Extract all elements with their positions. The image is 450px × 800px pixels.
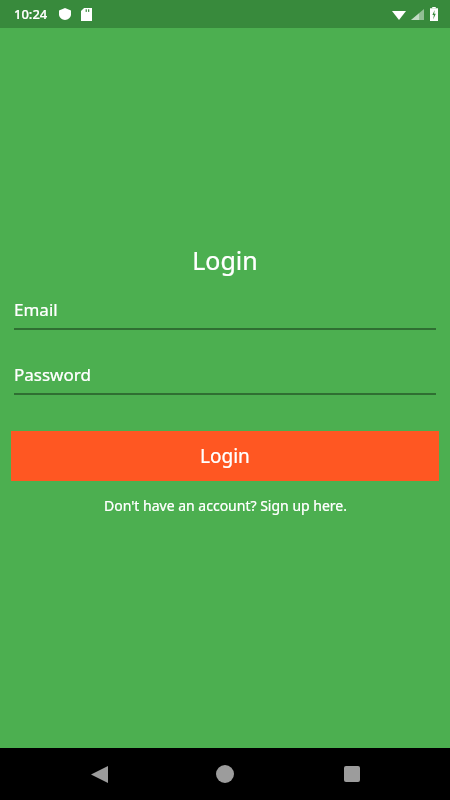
staticText: 10:24 — [14, 5, 48, 23]
button[interactable]: Back — [71, 748, 127, 800]
staticText: Password — [14, 363, 91, 386]
staticText: Don't have an account? Sign up here. — [104, 496, 347, 515]
button[interactable]: Don't have an account? Sign up here. — [0, 490, 450, 521]
button[interactable]: Login — [11, 431, 439, 481]
staticText: Login — [200, 443, 250, 469]
button[interactable]: Password — [14, 363, 436, 395]
button[interactable]: Recent apps — [324, 748, 380, 800]
button[interactable]: Home — [197, 748, 253, 800]
staticText: Login — [0, 243, 450, 277]
staticText: Email — [14, 298, 58, 321]
button[interactable]: Email — [14, 298, 436, 330]
